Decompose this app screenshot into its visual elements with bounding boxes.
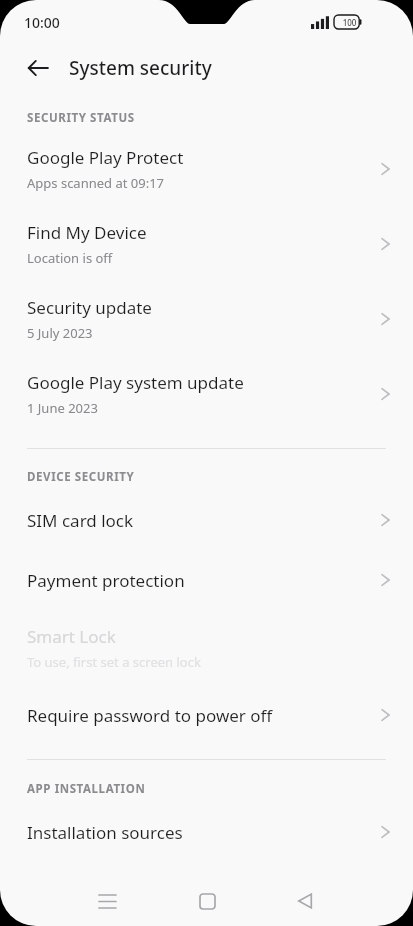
staticText: Require password to power off [27, 704, 380, 727]
button[interactable]: SIM card lock [0, 490, 413, 550]
staticText: System security [69, 55, 212, 81]
button[interactable]: Recents [83, 877, 131, 925]
button[interactable]: Google Play system update [0, 356, 413, 431]
staticText: Apps scanned at 09:17 [27, 174, 165, 192]
staticText: SECURITY STATUS [27, 110, 135, 126]
staticText: 1 June 2023 [27, 399, 98, 417]
button[interactable]: Require password to power off [0, 685, 413, 745]
button[interactable]: Find My Device [0, 206, 413, 281]
staticText: SIM card lock [27, 509, 380, 532]
staticText: DEVICE SECURITY [27, 469, 135, 485]
button[interactable]: Google Play Protect [0, 131, 413, 206]
button[interactable]: Back [16, 46, 60, 90]
button[interactable]: Back [281, 877, 329, 925]
staticText: Google Play Protect [27, 146, 184, 169]
staticText: Find My Device [27, 221, 147, 244]
staticText: 5 July 2023 [27, 324, 93, 342]
button[interactable]: Security update [0, 281, 413, 356]
staticText: Payment protection [27, 569, 380, 592]
staticText: 100 [337, 17, 362, 28]
staticText: Google Play system update [27, 371, 244, 394]
staticText: Installation sources [27, 821, 380, 844]
staticText: Security update [27, 296, 152, 319]
staticText: 10:00 [24, 13, 60, 32]
button[interactable]: Installation sources [0, 802, 413, 862]
staticText: To use, first set a screen lock [27, 653, 201, 671]
button[interactable]: Home [183, 877, 231, 925]
staticText: APP INSTALLATION [27, 781, 146, 797]
staticText: Location is off [27, 249, 113, 267]
button[interactable]: Payment protection [0, 550, 413, 610]
staticText: Smart Lock [27, 625, 116, 648]
